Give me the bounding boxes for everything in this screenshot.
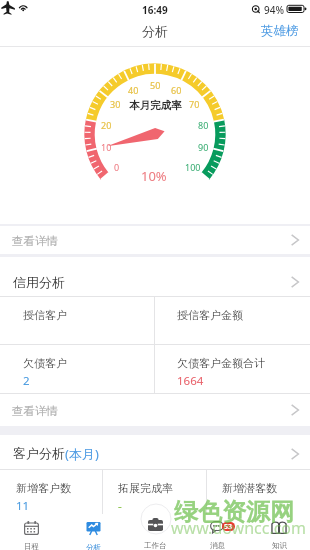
staticText: 90	[198, 141, 209, 153]
button[interactable]: 英雄榜	[250, 20, 310, 47]
button[interactable]: 新增客户数	[0, 470, 102, 514]
button[interactable]: 欠债客户金额合计	[155, 345, 310, 393]
button[interactable]: 欠债客户	[0, 345, 154, 393]
staticText: 10%	[141, 167, 167, 185]
staticText: 知识	[272, 541, 287, 550]
button[interactable]: 工作台	[124, 514, 186, 550]
staticText: 欠债客户	[23, 356, 67, 370]
staticText: 50	[150, 79, 161, 91]
staticText: 10	[101, 141, 112, 153]
staticText: 40	[128, 84, 139, 96]
staticText: 2	[23, 373, 30, 389]
staticText: 94%	[264, 3, 284, 17]
staticText: -	[118, 498, 122, 514]
staticText: 欠债客户金额合计	[177, 356, 265, 370]
button[interactable]: 授信客户	[0, 297, 154, 344]
button[interactable]: 查看详情	[0, 394, 310, 426]
staticText: 11	[16, 498, 30, 514]
button[interactable]: 53	[186, 514, 248, 550]
staticText: 100	[185, 161, 201, 173]
staticText: 拓展完成率	[118, 481, 173, 495]
button[interactable]: 分析	[62, 514, 124, 550]
staticText: 70	[189, 98, 200, 110]
staticText: 80	[198, 119, 209, 131]
staticText: 1664	[177, 373, 204, 389]
staticText: 分析	[86, 543, 101, 550]
staticText: 绿色资源网	[174, 497, 294, 527]
button[interactable]: 查看详情	[0, 226, 310, 254]
staticText: 16:49	[142, 3, 168, 17]
button[interactable]: 日程	[0, 514, 62, 550]
staticText: 查看详情	[12, 404, 58, 418]
staticText: 英雄榜	[261, 23, 299, 39]
staticText: 新增潜客数	[222, 481, 277, 495]
staticText: 授信客户	[23, 308, 67, 322]
staticText: 本月完成率	[129, 99, 182, 112]
staticText: 客户分析	[13, 445, 65, 461]
staticText: 0	[114, 161, 120, 173]
button[interactable]: 新增潜客数	[207, 470, 310, 514]
staticText: 新增客户数	[16, 481, 71, 495]
staticText: 60	[171, 84, 182, 96]
staticText: 分析	[142, 23, 168, 39]
staticText: 查看详情	[12, 234, 58, 248]
staticText: 工作台	[144, 541, 167, 550]
button[interactable]: 授信客户金额	[155, 297, 310, 344]
staticText: 信用分析	[13, 274, 65, 290]
button[interactable]: 拓展完成率	[103, 470, 206, 514]
button[interactable]: 知识	[248, 514, 310, 550]
staticText: 授信客户金额	[177, 308, 243, 322]
staticText: (本月)	[65, 445, 99, 463]
button[interactable]: 客户分析	[0, 435, 310, 469]
staticText: 消息	[210, 541, 225, 550]
staticText: 53	[224, 522, 233, 531]
staticText: 20	[101, 119, 112, 131]
staticText: www.downcc.com	[171, 517, 307, 539]
button[interactable]: 信用分析	[0, 257, 310, 296]
staticText: 日程	[24, 542, 39, 550]
staticText: 30	[110, 98, 121, 110]
